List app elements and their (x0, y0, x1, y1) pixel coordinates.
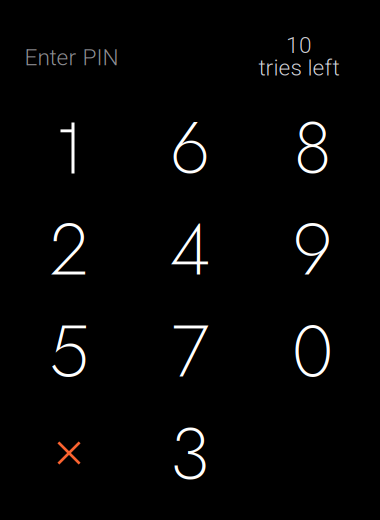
staticText: Enter PIN (24, 44, 118, 71)
staticText: 10 (286, 32, 312, 58)
staticText: 9 (292, 197, 332, 301)
staticText: 2 (49, 197, 88, 301)
button[interactable]: 4 (129, 199, 250, 300)
button[interactable]: 8 (252, 97, 373, 198)
staticText: tries left (258, 54, 339, 81)
staticText: 6 (170, 96, 210, 200)
button[interactable]: 7 (129, 301, 250, 402)
staticText: 5 (49, 299, 89, 403)
staticText: 3 (170, 402, 210, 506)
button[interactable]: 0 (252, 301, 373, 402)
button[interactable]: 9 (252, 199, 373, 300)
staticText: 4 (169, 197, 210, 301)
button[interactable]: 3 (129, 403, 250, 504)
button[interactable]: 6 (129, 97, 250, 198)
button[interactable]: 2 (8, 199, 129, 300)
staticText: 8 (293, 96, 331, 200)
button[interactable]: Delete (8, 403, 129, 504)
staticText: 0 (292, 299, 333, 403)
staticText: 7 (171, 299, 208, 403)
button[interactable]: 5 (8, 301, 129, 402)
button[interactable]: 1 (8, 97, 129, 198)
